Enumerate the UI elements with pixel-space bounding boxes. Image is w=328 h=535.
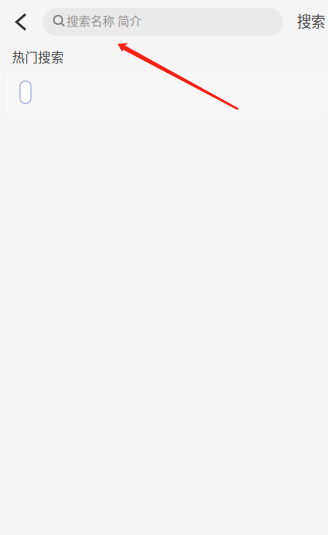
button[interactable]: 搜索输入框 — [43, 8, 283, 36]
staticText: 搜索 — [297, 10, 325, 31]
staticText: 搜索名称 简介 — [66, 12, 141, 30]
staticText: 热门搜索 — [12, 47, 64, 65]
button[interactable]: 搜索 — [283, 4, 325, 40]
button[interactable]: 返回 — [3, 4, 39, 40]
button[interactable]: 热门搜索标签 — [20, 81, 31, 103]
